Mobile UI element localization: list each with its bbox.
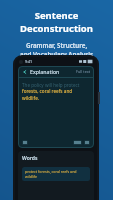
button[interactable]: Next	[84, 140, 90, 145]
button[interactable]: Play audio	[22, 140, 28, 145]
button[interactable]: Previous	[73, 140, 82, 145]
staticText: Sentence Deconstruction	[0, 9, 113, 35]
staticText: Explanation	[30, 68, 60, 75]
button[interactable]: Full text	[76, 69, 91, 74]
staticText: and Vocabulary Analysis	[0, 50, 113, 58]
staticText: Words	[22, 155, 38, 162]
staticText: protect forests, coral reefs and wildlif…	[25, 169, 87, 179]
staticText: Grammar, Structure,	[0, 41, 113, 49]
staticText: 9:41	[25, 59, 33, 64]
staticText: Full text	[76, 69, 91, 74]
staticText: The policy will help protect forests, co…	[22, 82, 90, 101]
button[interactable]: Back	[21, 68, 28, 75]
button[interactable]: protect forests, coral reefs and wildlif…	[22, 167, 90, 181]
